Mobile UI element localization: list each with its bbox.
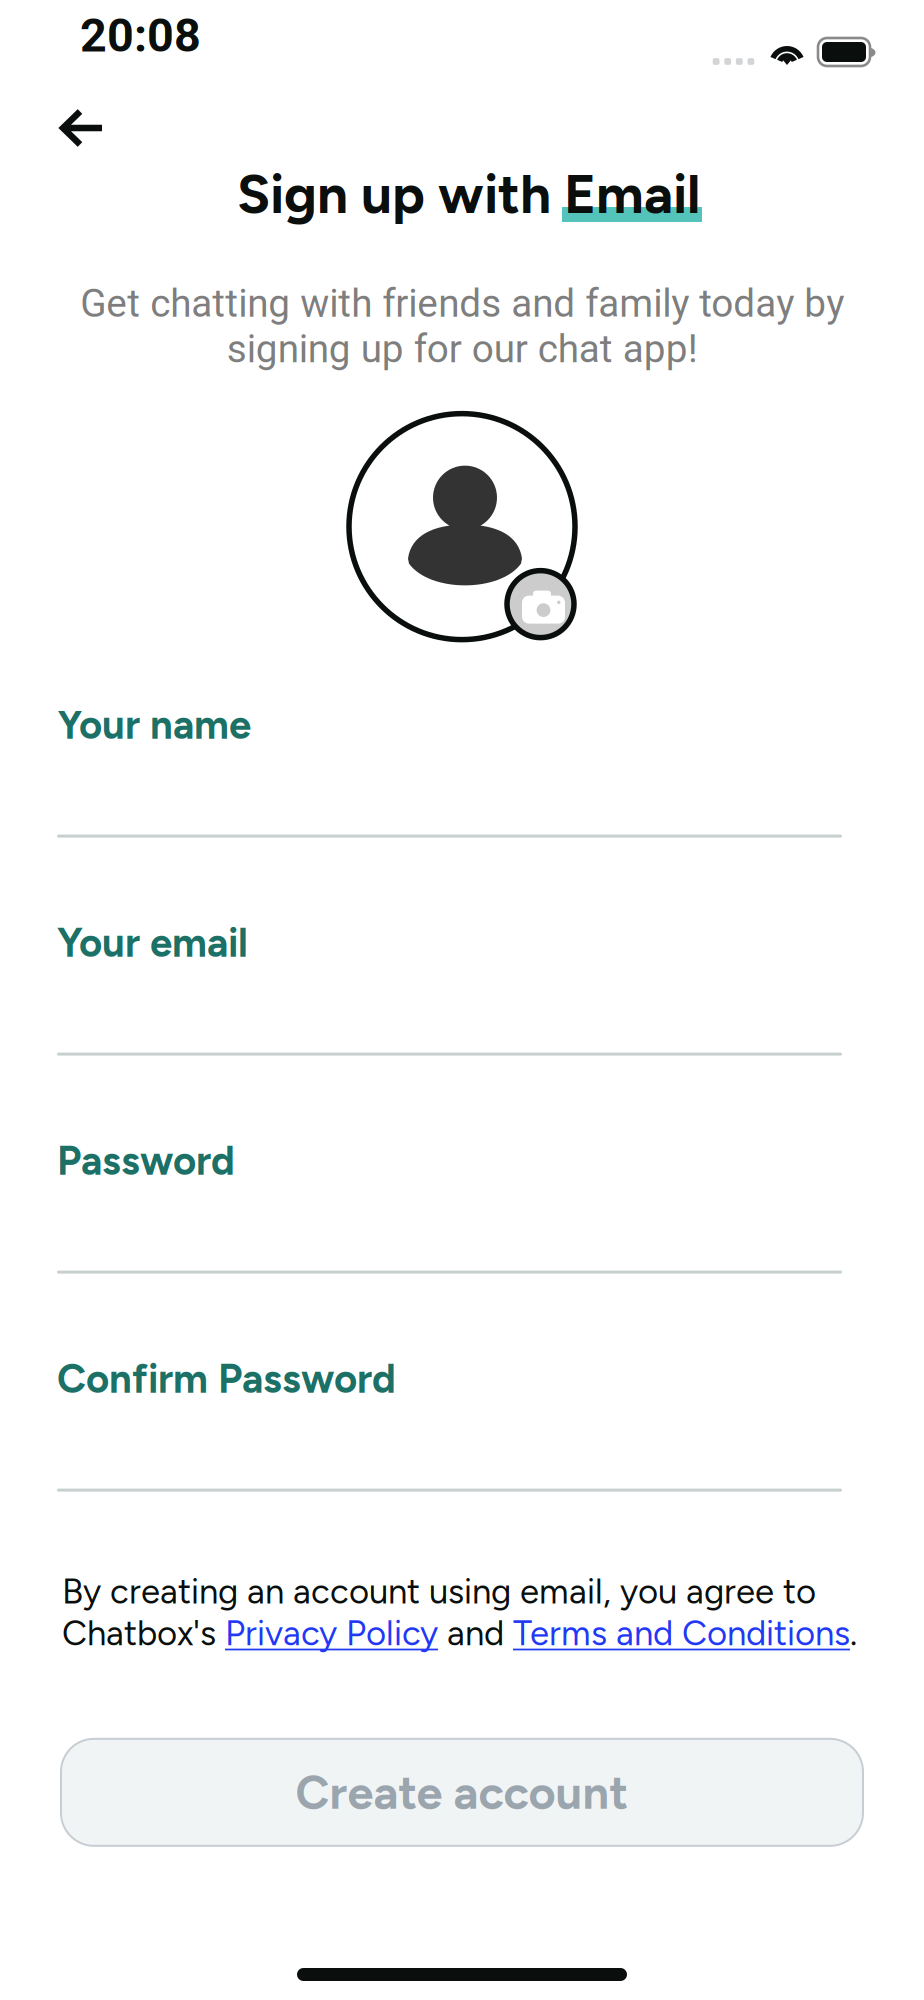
- staticText: Sign up with Email: [237, 161, 700, 227]
- staticText: Confirm Password: [57, 1355, 396, 1403]
- button[interactable]: Create account: [61, 1739, 863, 1846]
- staticText: Password: [57, 1137, 235, 1185]
- staticText: By creating an account using email, you …: [62, 1571, 857, 1654]
- staticText: Your email: [57, 919, 248, 967]
- button[interactable]: Your email: [57, 919, 842, 1056]
- staticText: Your name: [57, 701, 251, 749]
- staticText: 20:08: [80, 8, 201, 63]
- button[interactable]: Confirm Password: [57, 1355, 842, 1492]
- button[interactable]: Add profile photo: [349, 414, 581, 646]
- staticText: Create account: [295, 1764, 628, 1820]
- button[interactable]: Back: [0, 95, 129, 161]
- staticText: Get chatting with friends and family tod…: [80, 281, 844, 372]
- button[interactable]: Your name: [57, 701, 842, 838]
- button[interactable]: Password: [57, 1137, 842, 1274]
